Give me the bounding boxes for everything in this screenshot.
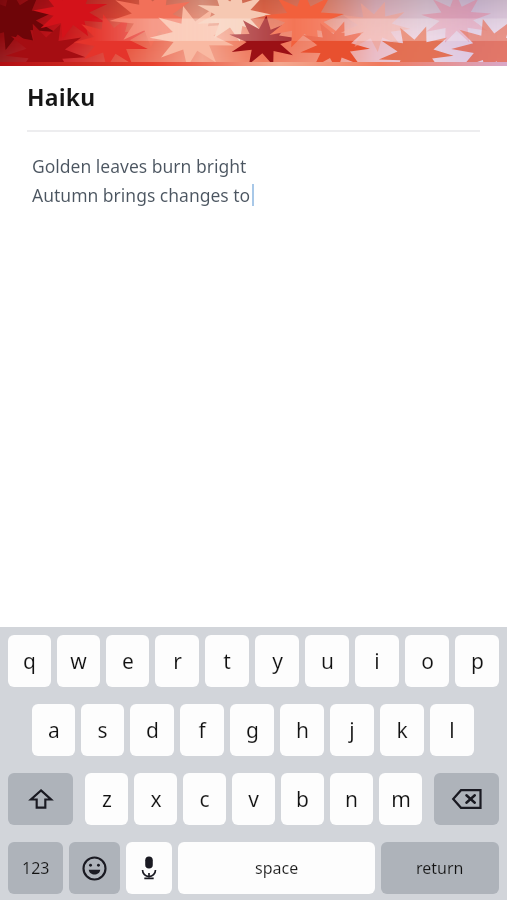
- button[interactable]: s: [81, 704, 124, 756]
- staticText: m: [391, 785, 411, 814]
- staticText: return: [416, 857, 464, 879]
- staticText: o: [421, 647, 434, 676]
- button[interactable]: u: [305, 635, 349, 687]
- staticText: Golden leaves burn bright: [32, 154, 247, 178]
- button[interactable]: n: [330, 773, 373, 825]
- staticText: t: [223, 647, 231, 676]
- button[interactable]: q: [8, 635, 51, 687]
- button[interactable]: v: [232, 773, 275, 825]
- staticText: v: [248, 785, 259, 814]
- staticText: c: [199, 785, 210, 814]
- button[interactable]: e: [106, 635, 149, 687]
- button[interactable]: space: [178, 842, 375, 894]
- button[interactable]: m: [379, 773, 422, 825]
- staticText: r: [173, 647, 182, 676]
- staticText: h: [296, 716, 309, 745]
- staticText: z: [102, 785, 112, 814]
- button[interactable]: Voice input: [126, 842, 172, 894]
- staticText: l: [449, 716, 455, 745]
- button[interactable]: a: [32, 704, 75, 756]
- staticText: x: [150, 785, 162, 814]
- button[interactable]: i: [355, 635, 399, 687]
- staticText: j: [349, 716, 355, 745]
- button[interactable]: h: [280, 704, 324, 756]
- button[interactable]: d: [130, 704, 174, 756]
- staticText: p: [471, 647, 484, 676]
- button[interactable]: k: [380, 704, 424, 756]
- staticText: f: [198, 716, 206, 745]
- staticText: n: [345, 785, 358, 814]
- button[interactable]: c: [183, 773, 226, 825]
- button[interactable]: return: [381, 842, 499, 894]
- button[interactable]: x: [134, 773, 177, 825]
- button[interactable]: Emoji: [69, 842, 120, 894]
- staticText: d: [146, 716, 159, 745]
- button[interactable]: f: [180, 704, 224, 756]
- button[interactable]: z: [85, 773, 128, 825]
- button[interactable]: t: [205, 635, 249, 687]
- staticText: s: [97, 716, 108, 745]
- staticText: Haiku: [27, 81, 96, 112]
- staticText: i: [374, 647, 380, 676]
- button[interactable]: o: [405, 635, 449, 687]
- button[interactable]: j: [330, 704, 374, 756]
- button[interactable]: y: [255, 635, 299, 687]
- staticText: Autumn brings changes to: [32, 183, 251, 207]
- staticText: e: [122, 647, 134, 676]
- button[interactable]: r: [155, 635, 199, 687]
- staticText: b: [296, 785, 309, 814]
- button[interactable]: 123: [8, 842, 63, 894]
- staticText: a: [48, 716, 60, 745]
- button[interactable]: Shift: [8, 773, 73, 825]
- staticText: q: [23, 647, 36, 676]
- button[interactable]: Backspace: [434, 773, 499, 825]
- button[interactable]: p: [455, 635, 499, 687]
- staticText: w: [70, 647, 87, 676]
- button[interactable]: g: [230, 704, 274, 756]
- button[interactable]: b: [281, 773, 324, 825]
- staticText: space: [255, 857, 299, 879]
- staticText: y: [272, 647, 283, 676]
- button[interactable]: l: [430, 704, 474, 756]
- staticText: g: [246, 716, 259, 745]
- staticText: k: [396, 716, 408, 745]
- staticText: u: [321, 647, 334, 676]
- button[interactable]: w: [57, 635, 100, 687]
- staticText: 123: [22, 857, 50, 879]
